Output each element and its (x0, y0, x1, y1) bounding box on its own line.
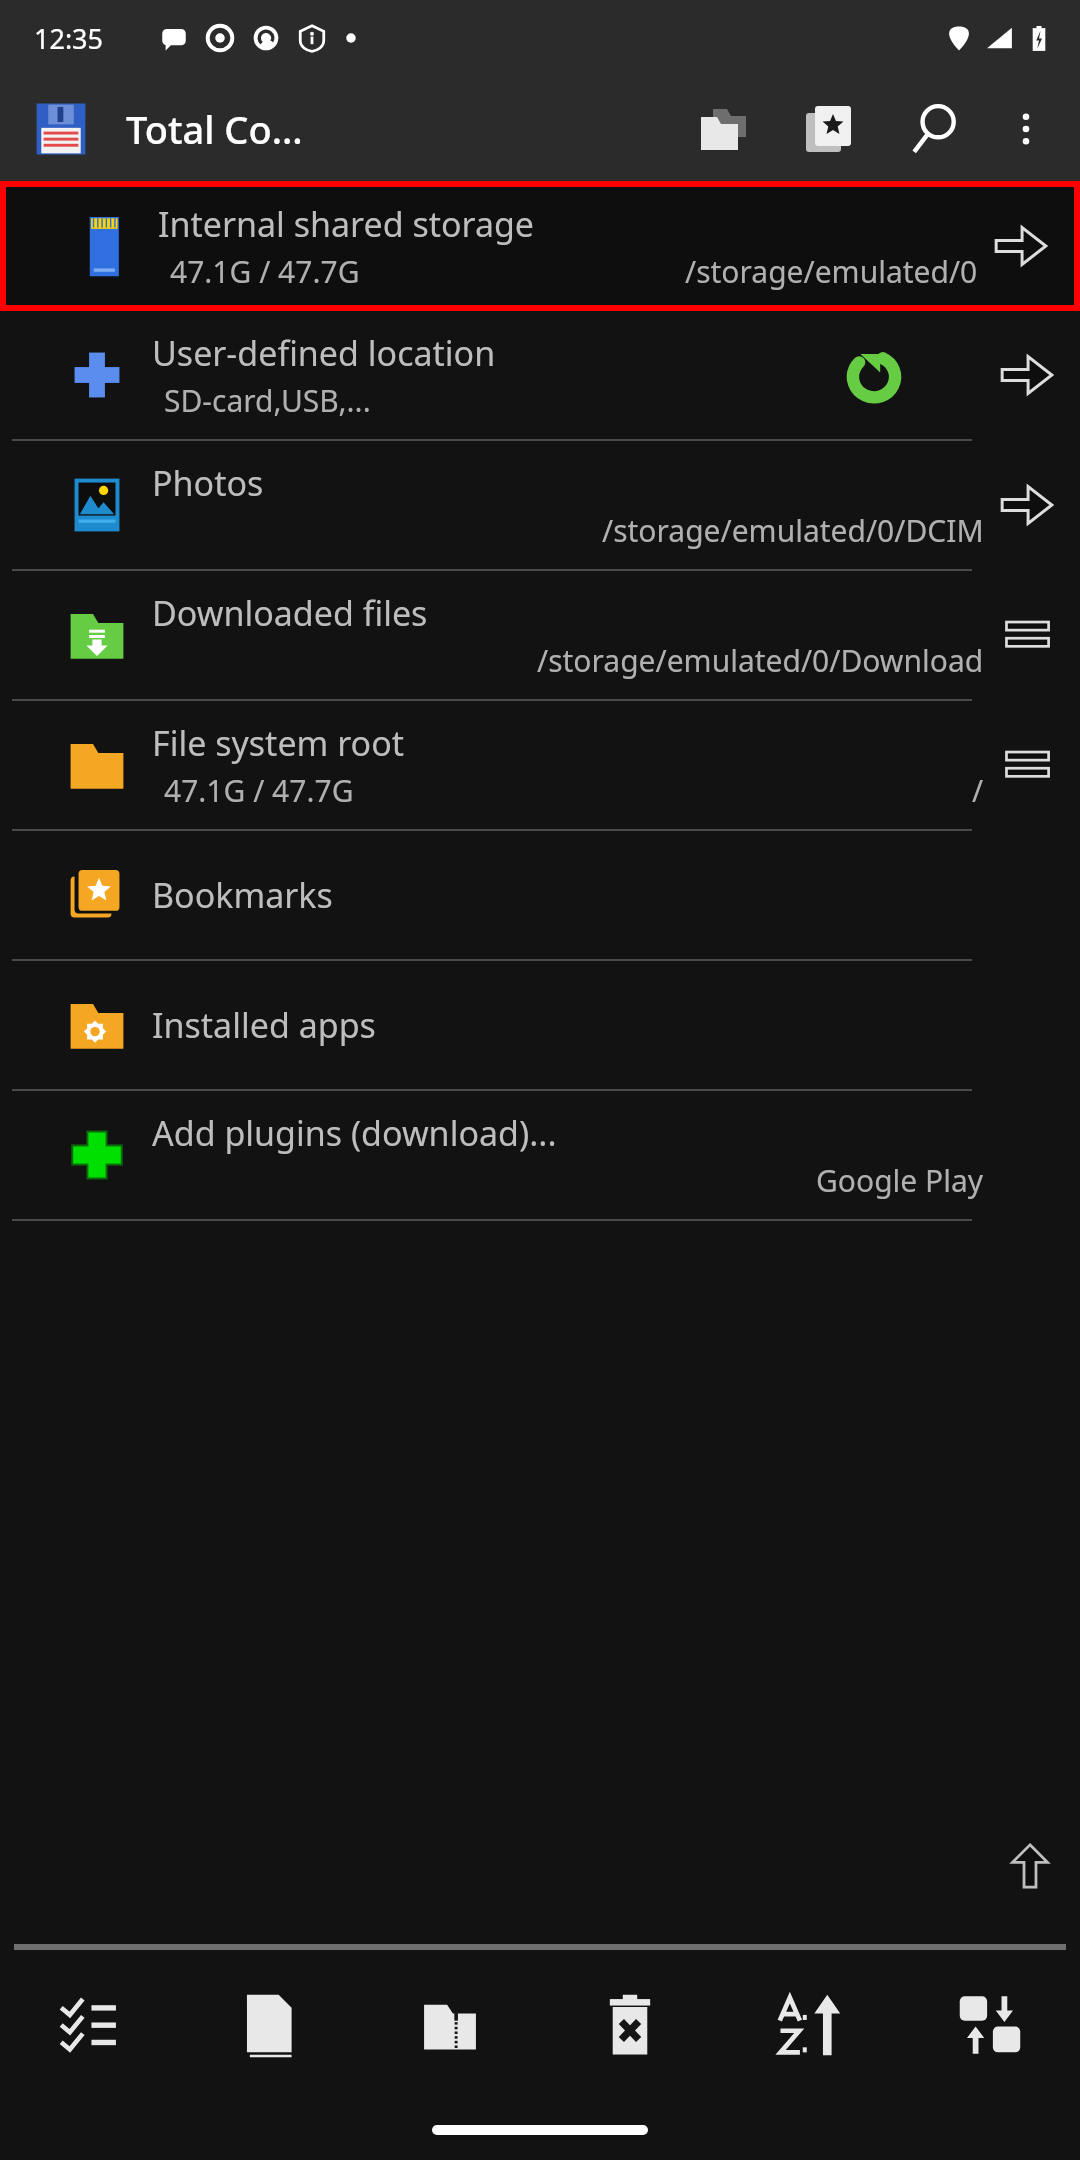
button[interactable]: Refresh (836, 337, 912, 413)
staticText: Bookmarks (152, 872, 333, 918)
button[interactable]: File system root (0, 701, 1080, 829)
button[interactable]: Add plugins (download)... (0, 1091, 1080, 1219)
button[interactable]: Photos (0, 441, 1080, 569)
button[interactable]: Move (900, 1950, 1080, 2100)
staticText: User-defined location (152, 330, 496, 376)
button[interactable]: Go (992, 340, 1062, 410)
button[interactable]: More options (994, 97, 1058, 161)
button[interactable]: Select (0, 1950, 180, 2100)
button[interactable]: Zip (360, 1950, 540, 2100)
staticText: Add plugins (download)... (152, 1110, 557, 1156)
staticText: 12:35 (34, 20, 104, 57)
button[interactable]: Go (992, 470, 1062, 540)
staticText: File system root (152, 720, 404, 766)
button[interactable]: Open folder (686, 92, 760, 166)
staticText: Downloaded files (152, 590, 428, 636)
button[interactable]: Bookmarks (0, 831, 1080, 959)
button[interactable]: Bookmarks (792, 92, 866, 166)
button[interactable]: Scroll to top (998, 1834, 1062, 1898)
staticText: /storage/emulated/0/DCIM (602, 510, 984, 551)
button[interactable]: Search (898, 92, 972, 166)
staticText: Total Co... (126, 103, 303, 155)
button[interactable]: New file (180, 1950, 360, 2100)
button[interactable]: Options (992, 600, 1062, 670)
staticText: /storage/emulated/0 (685, 251, 978, 292)
staticText: Google Play (816, 1160, 984, 1201)
staticText: Internal shared storage (158, 201, 535, 247)
button[interactable]: Go (986, 211, 1056, 281)
staticText: 47.1G / 47.7G (164, 770, 354, 811)
staticText: 47.1G / 47.7G (170, 251, 360, 292)
staticText: /storage/emulated/0/Download (537, 640, 984, 681)
staticText: SD-card,USB,... (164, 380, 371, 421)
button[interactable]: Sort (720, 1950, 900, 2100)
button[interactable]: Options (992, 730, 1062, 800)
button[interactable]: App icon (30, 98, 92, 160)
button[interactable]: Installed apps (0, 961, 1080, 1089)
button[interactable]: Delete (540, 1950, 720, 2100)
staticText: Photos (152, 460, 264, 506)
staticText: Installed apps (152, 1002, 376, 1048)
staticText: / (972, 770, 984, 811)
button[interactable]: Downloaded files (0, 571, 1080, 699)
button[interactable]: User-defined location (0, 311, 1080, 439)
button[interactable]: Internal shared storage (6, 187, 1074, 305)
